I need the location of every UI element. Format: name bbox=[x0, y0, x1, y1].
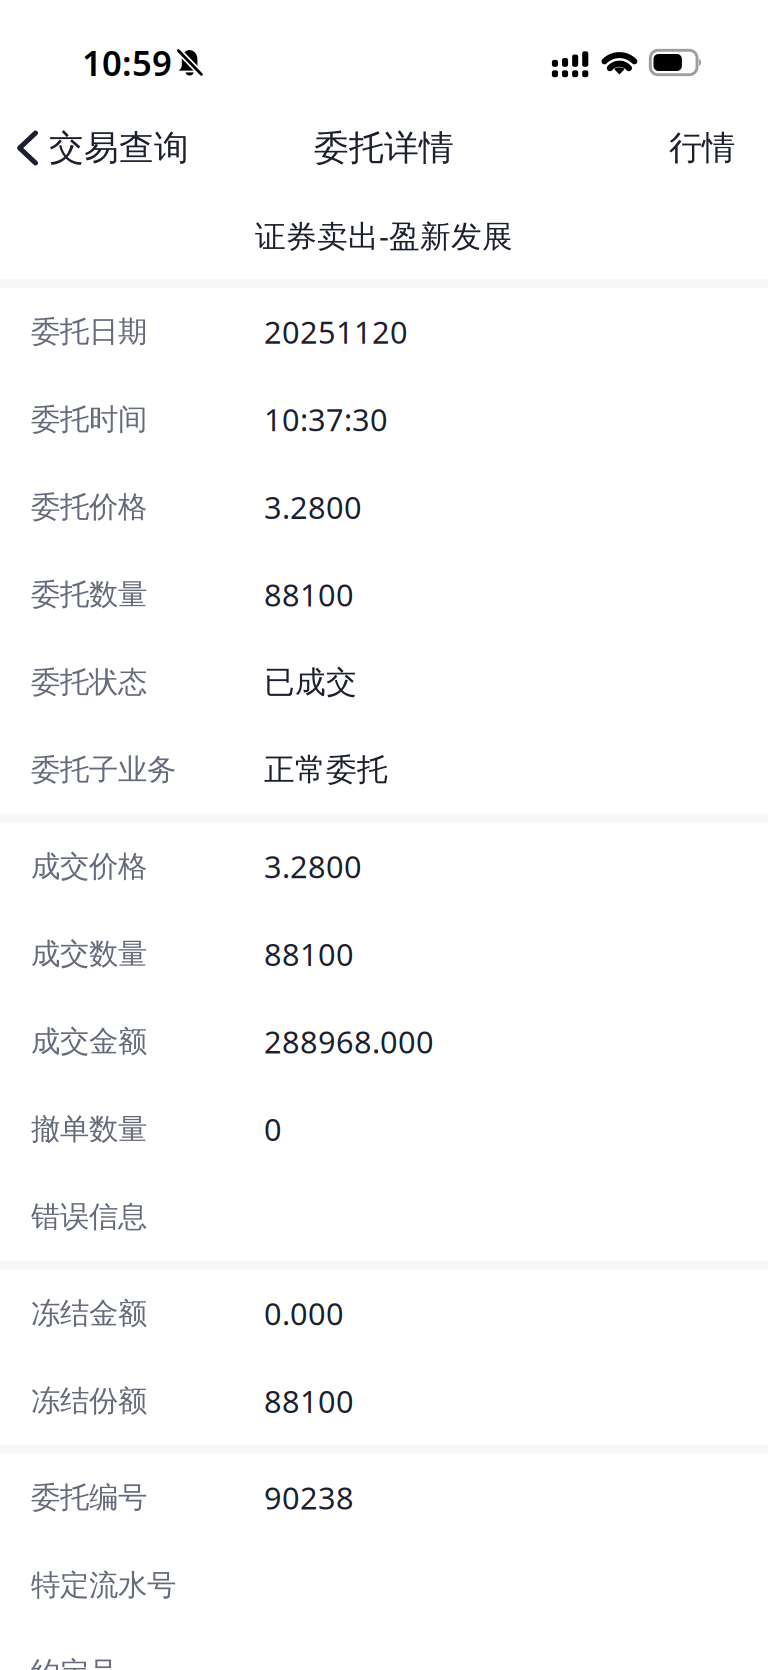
staticText: 委托详情 bbox=[314, 127, 454, 169]
staticText: 90238 bbox=[264, 1477, 354, 1518]
staticText: 委托日期 bbox=[31, 314, 147, 350]
staticText: 特定流水号 bbox=[31, 1567, 176, 1603]
staticText: 288968.000 bbox=[264, 1021, 434, 1062]
staticText: 0 bbox=[264, 1109, 282, 1149]
staticText: 0.000 bbox=[264, 1293, 344, 1334]
staticText: 88100 bbox=[264, 934, 354, 974]
staticText: 88100 bbox=[264, 1381, 354, 1421]
staticText: 约定号 bbox=[31, 1655, 118, 1670]
staticText: 10:59 bbox=[82, 39, 172, 85]
staticText: 10:37:30 bbox=[264, 399, 388, 440]
staticText: 错误信息 bbox=[31, 1199, 147, 1235]
button[interactable]: 交易查询 bbox=[0, 110, 203, 186]
staticText: 正常委托 bbox=[264, 751, 388, 789]
staticText: 20251120 bbox=[264, 311, 408, 352]
staticText: 委托时间 bbox=[31, 401, 147, 437]
staticText: 委托编号 bbox=[31, 1480, 147, 1516]
staticText: 委托价格 bbox=[31, 489, 147, 525]
staticText: 88100 bbox=[264, 574, 354, 615]
button[interactable]: 行情 bbox=[651, 110, 768, 186]
staticText: 成交金额 bbox=[31, 1024, 147, 1060]
staticText: 委托数量 bbox=[31, 577, 147, 613]
staticText: 3.2800 bbox=[264, 487, 362, 527]
staticText: 证券卖出-盈新发展 bbox=[255, 215, 513, 256]
staticText: 3.2800 bbox=[264, 846, 362, 887]
staticText: 冻结金额 bbox=[31, 1295, 147, 1331]
staticText: 交易查询 bbox=[49, 127, 189, 169]
staticText: 委托状态 bbox=[31, 664, 147, 700]
staticText: 撤单数量 bbox=[31, 1111, 147, 1147]
staticText: 已成交 bbox=[264, 663, 357, 701]
staticText: 成交数量 bbox=[31, 936, 147, 972]
staticText: 委托子业务 bbox=[31, 752, 176, 788]
staticText: 行情 bbox=[669, 127, 735, 168]
staticText: 成交价格 bbox=[31, 848, 147, 884]
staticText: 冻结份额 bbox=[31, 1383, 147, 1419]
